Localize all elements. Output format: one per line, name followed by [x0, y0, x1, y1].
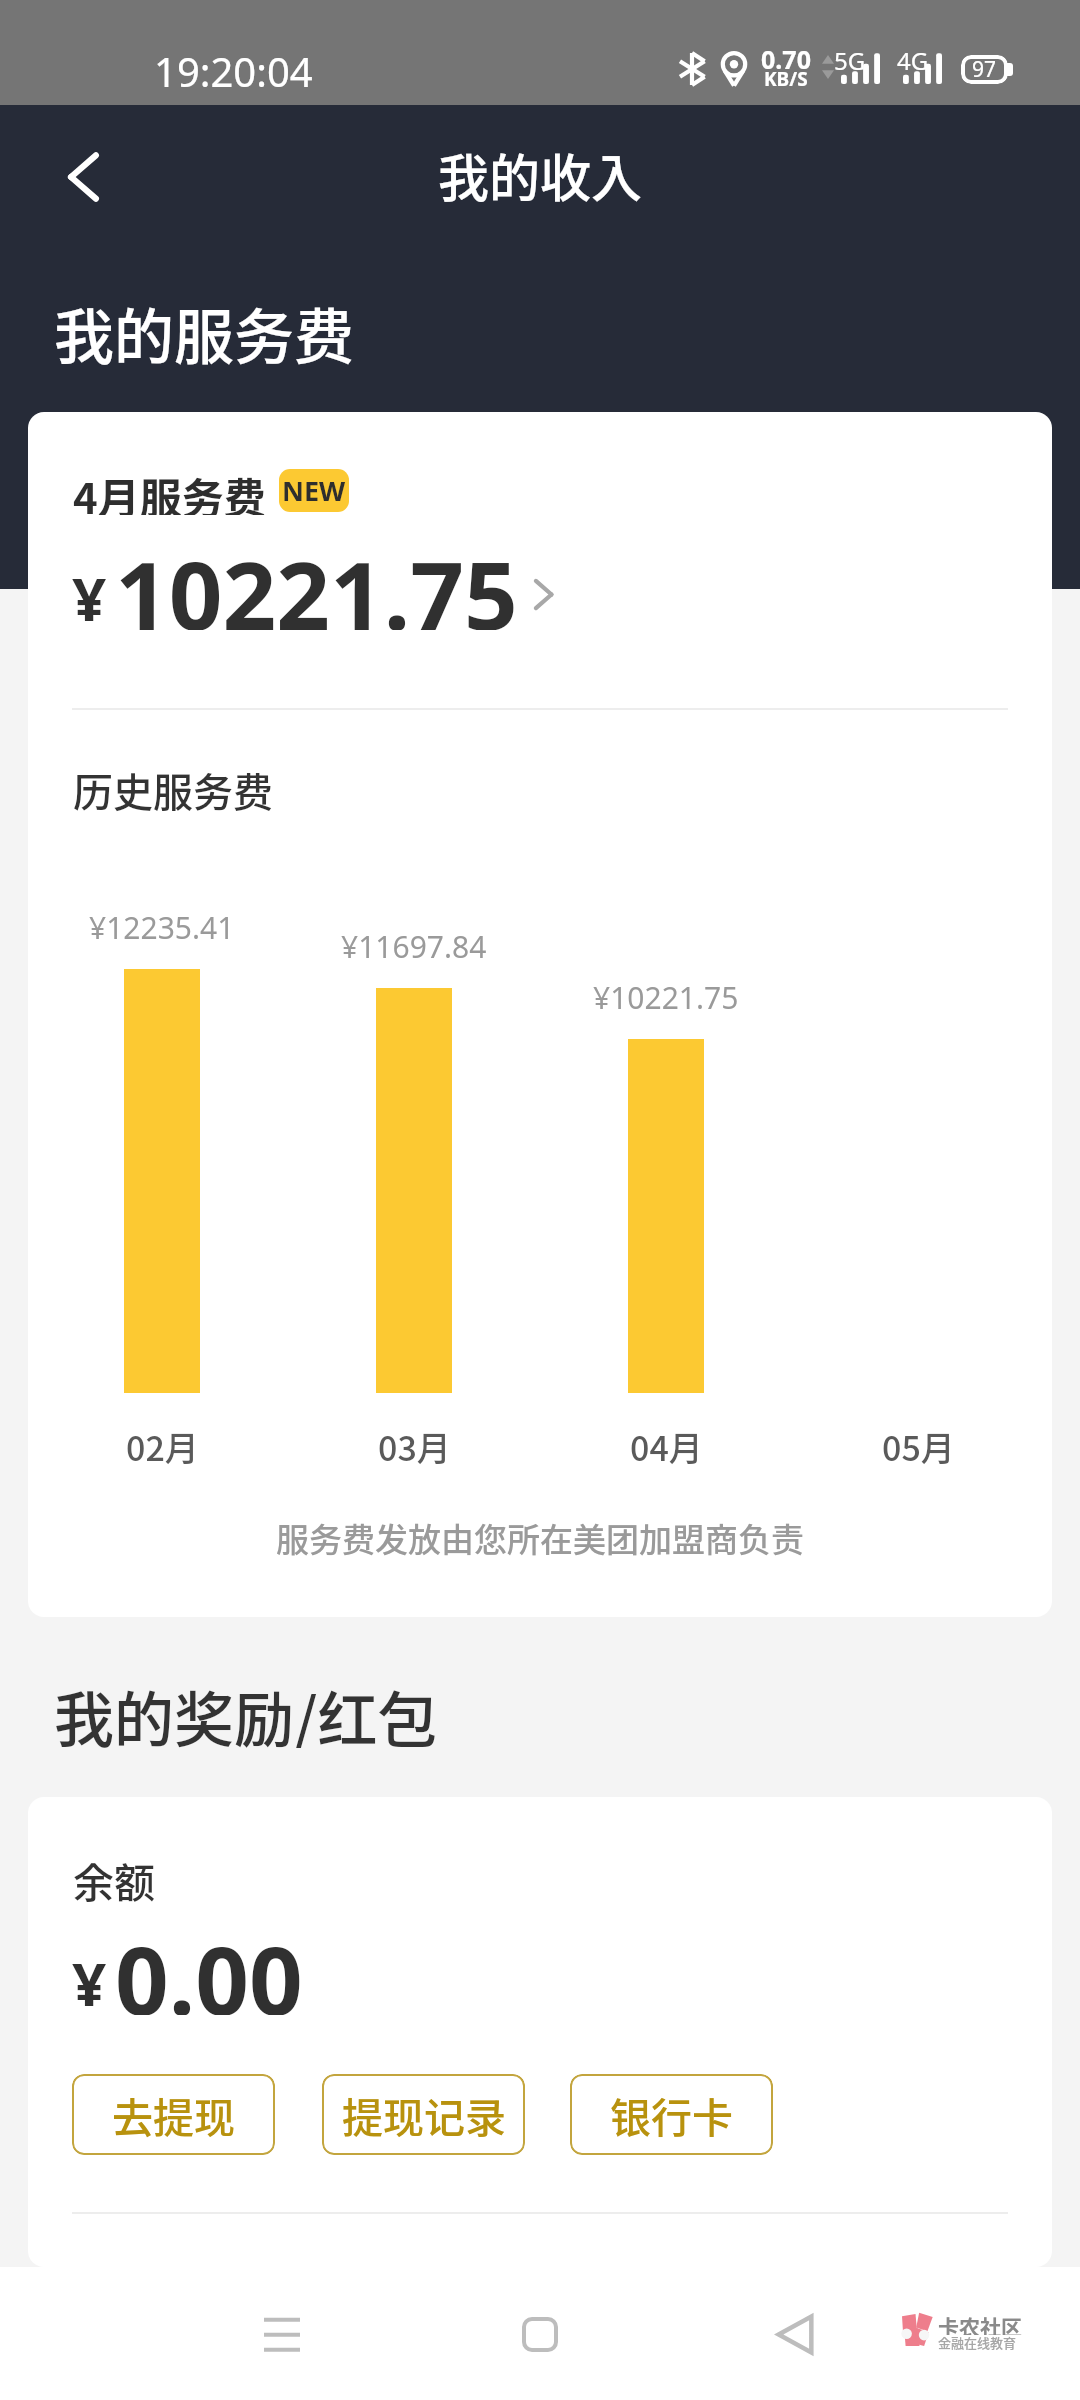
button[interactable]: 银行卡 — [570, 2074, 773, 2155]
staticText: 04月 — [630, 1422, 703, 1470]
staticText: 历史服务费 — [73, 761, 273, 817]
button[interactable]: Back — [740, 2279, 850, 2389]
staticText: 97 — [972, 55, 997, 84]
staticText: 银行卡 — [610, 2085, 733, 2144]
staticText: ¥10221.75 — [593, 977, 739, 1018]
button[interactable]: 去提现 — [72, 2074, 275, 2155]
staticText: 我的奖励/红包 — [54, 1672, 438, 1748]
button[interactable]: Recents — [227, 2279, 337, 2389]
staticText: 05月 — [882, 1422, 955, 1470]
staticText: KB/S — [764, 66, 808, 92]
button[interactable]: 4月服务费 ¥10221.75 详情 — [72, 530, 632, 630]
staticText: 余额 — [73, 1850, 155, 1906]
staticText: 我的收入 — [438, 138, 643, 208]
button[interactable]: Home — [485, 2279, 595, 2389]
staticText: 5G — [834, 44, 866, 76]
staticText: NEW — [282, 472, 346, 509]
button[interactable]: Back — [51, 144, 117, 210]
staticText: ¥11697.84 — [341, 926, 487, 967]
staticText: 02月 — [126, 1422, 199, 1470]
staticText: 去提现 — [112, 2085, 235, 2144]
staticText: 03月 — [378, 1422, 451, 1470]
staticText: ¥12235.41 — [89, 907, 235, 948]
staticText: 我的服务费 — [54, 289, 354, 369]
staticText: 卡农社区 — [938, 2311, 1022, 2335]
staticText: 4月服务费 — [73, 465, 266, 515]
staticText: 0.00 — [115, 1915, 303, 2015]
staticText: 金融在线教育 — [938, 2333, 1017, 2351]
staticText: ¥ — [72, 1942, 107, 2024]
staticText: 4G — [897, 44, 929, 76]
button[interactable]: 提现记录 — [322, 2074, 525, 2155]
staticText: 10221.75 — [115, 530, 518, 630]
staticText: ¥ — [72, 557, 107, 639]
staticText: 19:20:04 — [154, 44, 313, 92]
staticText: 提现记录 — [342, 2085, 506, 2144]
staticText: 0.70 — [761, 42, 811, 74]
staticText: 服务费发放由您所在美团加盟商负责 — [276, 1514, 804, 1558]
